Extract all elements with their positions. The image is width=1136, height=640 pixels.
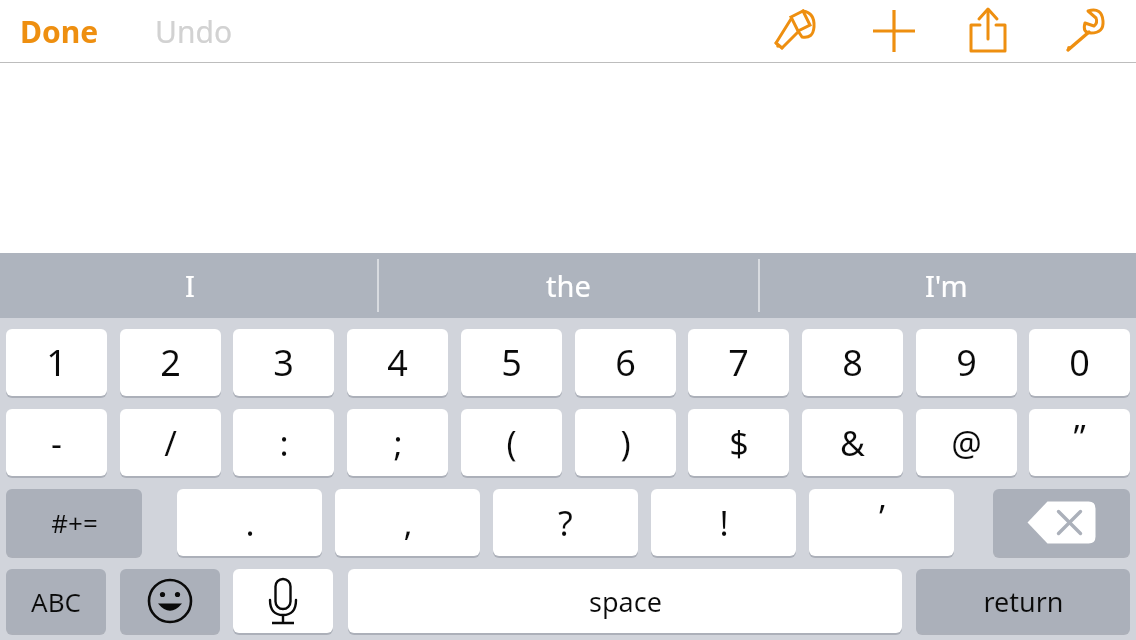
staticText: @ <box>951 420 982 466</box>
button[interactable]: the <box>379 253 758 318</box>
staticText: Undo <box>155 11 233 52</box>
staticText: 3 <box>273 338 294 387</box>
button[interactable]: 4 <box>347 329 448 396</box>
staticText: . <box>245 500 255 546</box>
staticText: , <box>403 500 413 546</box>
staticText: / <box>164 420 177 466</box>
staticText: ; <box>393 420 403 466</box>
staticText: & <box>840 420 865 466</box>
button[interactable]: Settings <box>1053 0 1115 62</box>
button[interactable]: . <box>177 489 322 556</box>
button[interactable]: ” <box>1029 409 1130 476</box>
staticText: 8 <box>842 338 863 387</box>
staticText: : <box>279 420 289 466</box>
button[interactable]: $ <box>688 409 789 476</box>
staticText: ” <box>1073 414 1086 460</box>
button[interactable]: I <box>0 253 379 318</box>
button[interactable]: Undo <box>155 8 265 54</box>
staticText: I'm <box>925 266 968 305</box>
button[interactable]: 8 <box>802 329 903 396</box>
staticText: space <box>589 583 662 620</box>
button[interactable]: space <box>348 569 902 633</box>
button[interactable]: 6 <box>575 329 676 396</box>
button[interactable]: @ <box>916 409 1017 476</box>
button[interactable]: Paint brush <box>762 0 824 62</box>
staticText: 5 <box>501 338 522 387</box>
staticText: ? <box>558 500 573 546</box>
staticText: 7 <box>728 338 749 387</box>
staticText: ) <box>620 420 631 466</box>
button[interactable]: ; <box>347 409 448 476</box>
button[interactable]: 7 <box>688 329 789 396</box>
button[interactable]: Share <box>957 0 1019 62</box>
button[interactable]: Backspace <box>993 489 1130 556</box>
button[interactable]: : <box>233 409 334 476</box>
button[interactable]: 9 <box>916 329 1017 396</box>
button[interactable]: ABC <box>6 569 106 633</box>
staticText: ! <box>719 500 729 546</box>
staticText: 6 <box>615 338 636 387</box>
staticText: 9 <box>956 338 977 387</box>
button[interactable]: Done <box>20 8 130 54</box>
staticText: ’ <box>879 494 885 540</box>
button[interactable]: return <box>916 569 1130 633</box>
staticText: 2 <box>160 338 181 387</box>
staticText: the <box>546 266 591 305</box>
staticText: - <box>51 420 62 466</box>
button[interactable]: Emoji <box>120 569 220 633</box>
button[interactable]: , <box>335 489 480 556</box>
staticText: 4 <box>387 338 408 387</box>
button[interactable]: & <box>802 409 903 476</box>
staticText: #+= <box>51 505 98 540</box>
button[interactable]: ) <box>575 409 676 476</box>
button[interactable]: ! <box>651 489 796 556</box>
button[interactable]: / <box>120 409 221 476</box>
button[interactable]: 5 <box>461 329 562 396</box>
staticText: 1 <box>46 338 67 387</box>
button[interactable]: ( <box>461 409 562 476</box>
staticText: Done <box>20 11 99 52</box>
staticText: 0 <box>1069 338 1090 387</box>
staticText: ABC <box>31 584 81 619</box>
staticText: ( <box>506 420 517 466</box>
staticText: I <box>185 266 195 305</box>
button[interactable]: - <box>6 409 107 476</box>
button[interactable]: ’ <box>809 489 954 556</box>
button[interactable]: 3 <box>233 329 334 396</box>
button[interactable]: #+= <box>6 489 142 556</box>
button[interactable]: ? <box>493 489 638 556</box>
button[interactable]: 2 <box>120 329 221 396</box>
staticText: $ <box>729 420 749 466</box>
button[interactable]: Dictate <box>233 569 333 633</box>
button[interactable]: Add <box>863 0 925 62</box>
button[interactable]: I'm <box>757 253 1136 318</box>
button[interactable]: 1 <box>6 329 107 396</box>
button[interactable]: 0 <box>1029 329 1130 396</box>
staticText: return <box>983 583 1064 620</box>
